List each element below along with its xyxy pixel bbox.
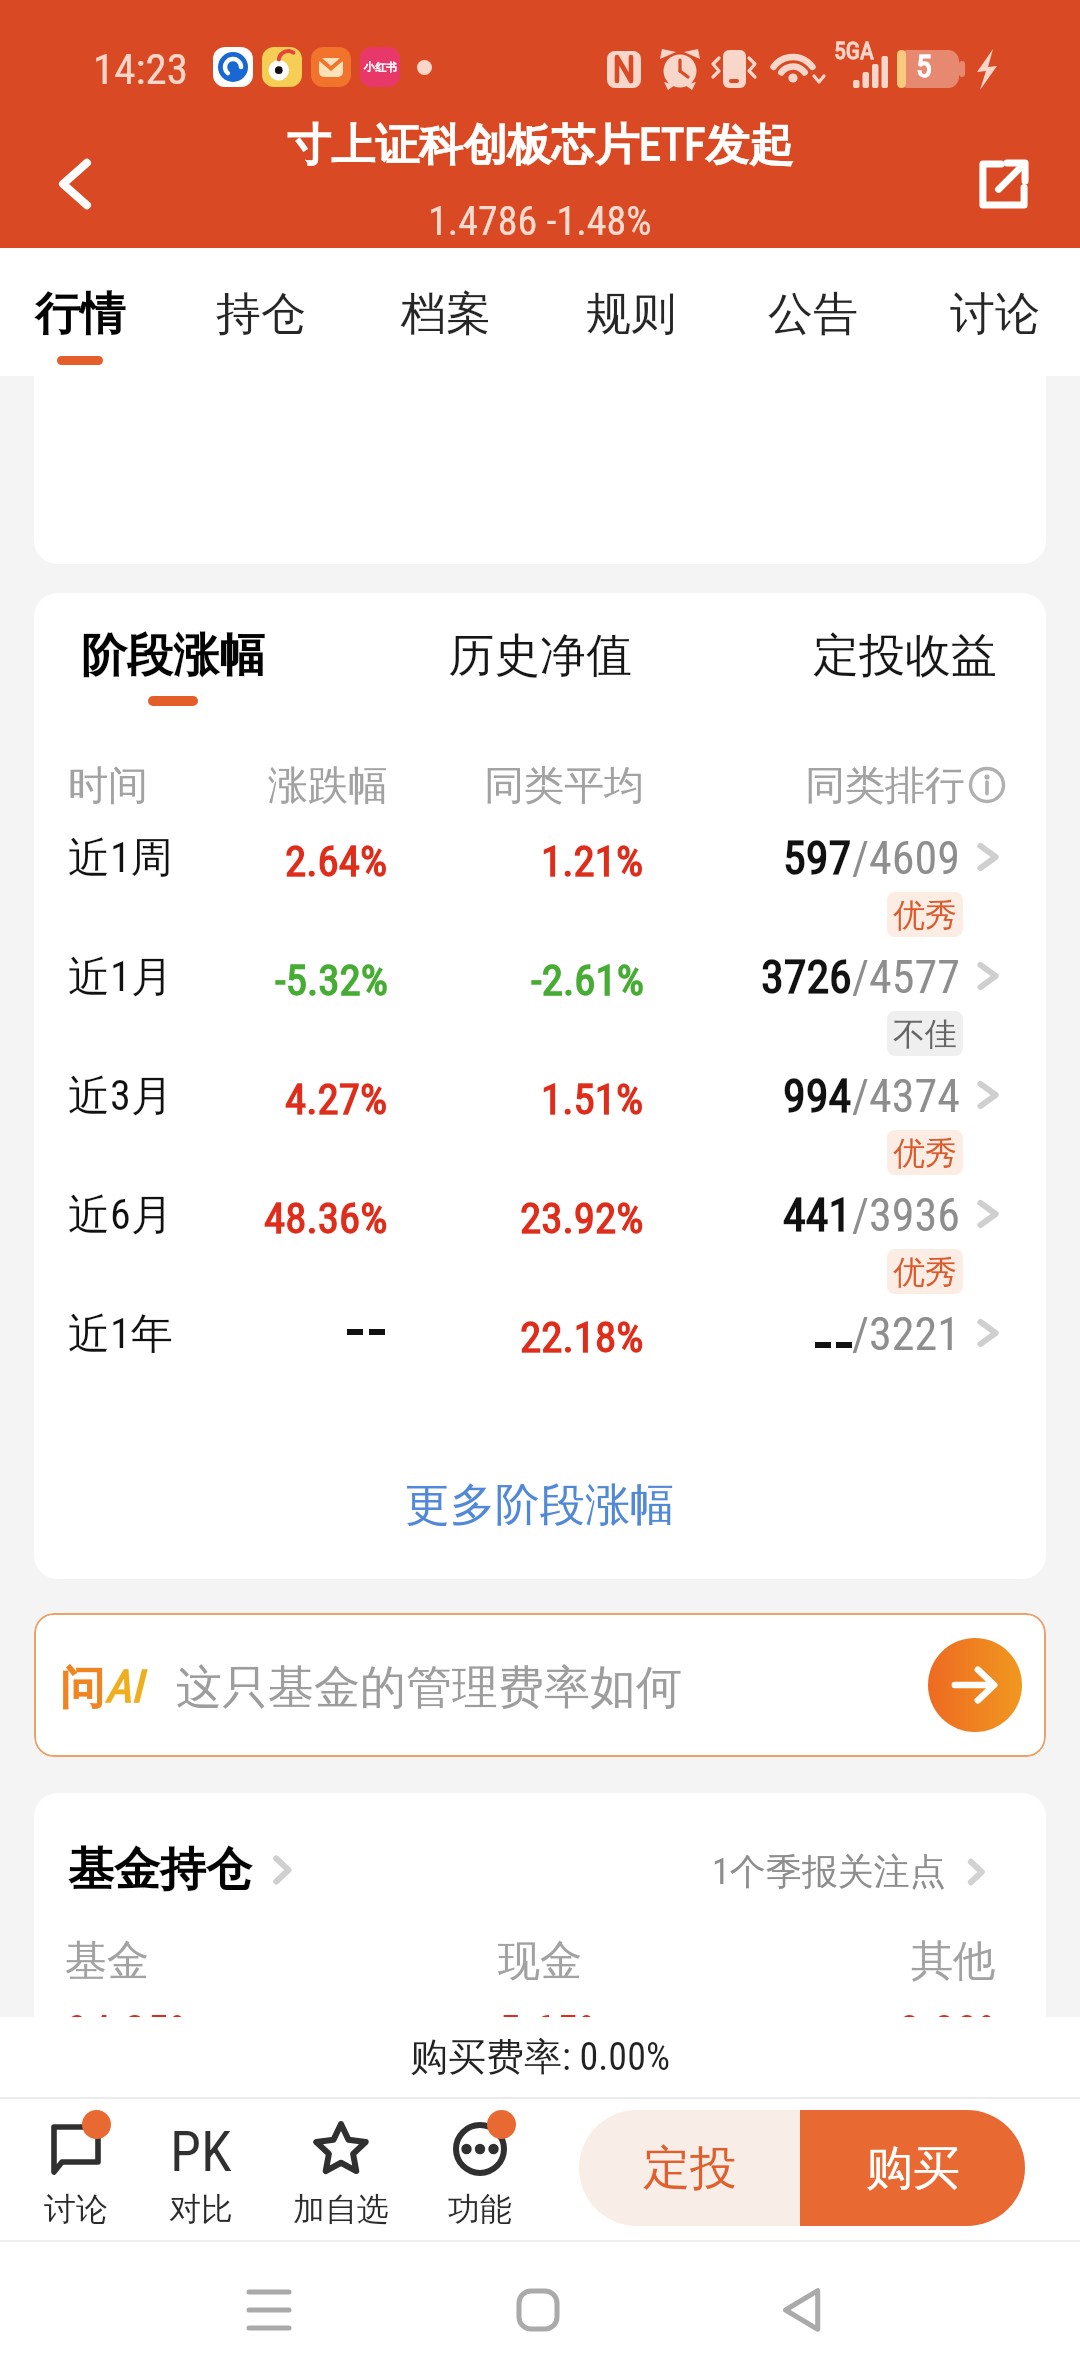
button[interactable]: 阶段涨幅 [73, 627, 273, 706]
button[interactable]: 持仓 [173, 248, 349, 376]
button[interactable]: Back [31, 140, 119, 228]
staticText: 小红书 [364, 60, 397, 74]
staticText: 1.51% [541, 1074, 644, 1124]
staticText: 1个季报关注点 [712, 1849, 946, 1894]
staticText: 5.65% [498, 2005, 608, 2053]
staticText: 涨跌幅 [268, 760, 388, 810]
button[interactable]: 1个季报关注点 [712, 1849, 992, 1894]
staticText: /3936 [852, 1188, 960, 1242]
staticText: 5GA [834, 37, 874, 65]
staticText: 阶段涨幅 [81, 627, 265, 685]
staticText: 现金 [498, 1935, 582, 1988]
button[interactable]: Back [768, 2275, 838, 2345]
staticText: -2.61% [531, 955, 644, 1005]
staticText: 公告 [768, 286, 858, 343]
staticText: 5 [916, 47, 932, 85]
staticText: 购买 [866, 2139, 960, 2198]
button[interactable]: 讨论 [14, 2099, 138, 2240]
staticText: 1.4786 -1.48% [428, 198, 652, 245]
button[interactable]: Home [503, 2275, 573, 2345]
button[interactable] [34, 1276, 1046, 1392]
staticText: 问 [60, 1660, 105, 1717]
button[interactable] [34, 1038, 1046, 1154]
button[interactable]: PK [139, 2099, 263, 2240]
staticText: /4577 [852, 950, 960, 1004]
staticText: -5.32% [275, 955, 388, 1005]
button[interactable]: Recents [234, 2275, 304, 2345]
button[interactable] [34, 1157, 1046, 1273]
staticText: 3726 [761, 950, 852, 1004]
staticText: 功能 [448, 2189, 512, 2229]
staticText: 对比 [169, 2189, 233, 2229]
button[interactable]: 定投收益 [805, 627, 1005, 685]
staticText: 597 [783, 831, 852, 885]
staticText: 更多阶段涨幅 [405, 1477, 675, 1534]
staticText: /3221 [852, 1307, 960, 1361]
button[interactable]: 基金持仓 [68, 1841, 300, 1899]
button[interactable]: Share [959, 140, 1047, 228]
staticText: 近1年 [68, 1308, 173, 1361]
staticText: 定投 [643, 2139, 737, 2198]
staticText: 近1月 [68, 951, 173, 1004]
staticText: 优秀 [893, 1252, 957, 1292]
staticText: 规则 [586, 286, 676, 343]
staticText: 定投收益 [813, 627, 997, 685]
staticText: 441 [783, 1188, 852, 1242]
staticText: 0.00% [898, 2005, 1008, 2053]
staticText: 基金持仓 [68, 1841, 252, 1899]
staticText: 近3月 [68, 1070, 173, 1123]
staticText: 持仓 [216, 286, 306, 343]
button[interactable] [34, 919, 1046, 1035]
button[interactable]: 更多阶段涨幅 [34, 1455, 1046, 1555]
staticText: /4374 [852, 1069, 960, 1123]
staticText: 23.92% [520, 1193, 644, 1243]
staticText: 2.64% [285, 836, 388, 886]
button[interactable]: 加自选 [279, 2099, 403, 2240]
staticText: 讨论 [44, 2189, 108, 2229]
staticText: 加自选 [293, 2189, 389, 2229]
staticText: 94.25% [66, 2005, 199, 2053]
staticText: 讨论 [950, 286, 1040, 343]
staticText: 4.27% [285, 1074, 388, 1124]
button[interactable]: 档案 [358, 248, 534, 376]
button[interactable]: 讨论 [907, 248, 1080, 376]
button[interactable]: 问 [34, 1613, 1046, 1757]
staticText: 优秀 [893, 1133, 957, 1173]
staticText: 这只基金的管理费率如何 [176, 1659, 682, 1717]
staticText: 其他 [911, 1935, 995, 1988]
staticText: 近6月 [68, 1189, 173, 1242]
button[interactable]: 行情 [0, 248, 168, 376]
staticText: 行情 [35, 286, 125, 343]
staticText: 时间 [68, 760, 148, 810]
staticText: 同类排行 [805, 760, 965, 810]
staticText: 22.18% [520, 1312, 644, 1362]
staticText: 48.36% [264, 1193, 388, 1243]
staticText: 1.21% [541, 836, 644, 886]
button[interactable] [34, 800, 1046, 916]
staticText: 近1周 [68, 832, 173, 885]
button[interactable]: 功能 [418, 2099, 542, 2240]
staticText: 994 [783, 1069, 852, 1123]
staticText: 优秀 [893, 895, 957, 935]
button[interactable]: 购买 [800, 2110, 1025, 2226]
staticText: 寸上证科创板芯片ETF发起 [287, 118, 794, 173]
staticText: 历史净值 [448, 627, 632, 685]
button[interactable]: 规则 [543, 248, 719, 376]
staticText: /4609 [852, 831, 960, 885]
staticText: 14:23 [93, 44, 188, 94]
staticText: 基金 [65, 1935, 149, 1988]
staticText: 购买费率: 0.00% [410, 2033, 670, 2081]
staticText: 不佳 [893, 1014, 957, 1054]
staticText: AI [105, 1660, 143, 1713]
button[interactable]: 公告 [725, 248, 901, 376]
button[interactable]: 历史净值 [440, 627, 640, 685]
button[interactable]: 定投 [579, 2110, 800, 2226]
staticText: 同类平均 [484, 760, 644, 810]
staticText: 档案 [401, 286, 491, 343]
staticText: PK [170, 2119, 232, 2173]
